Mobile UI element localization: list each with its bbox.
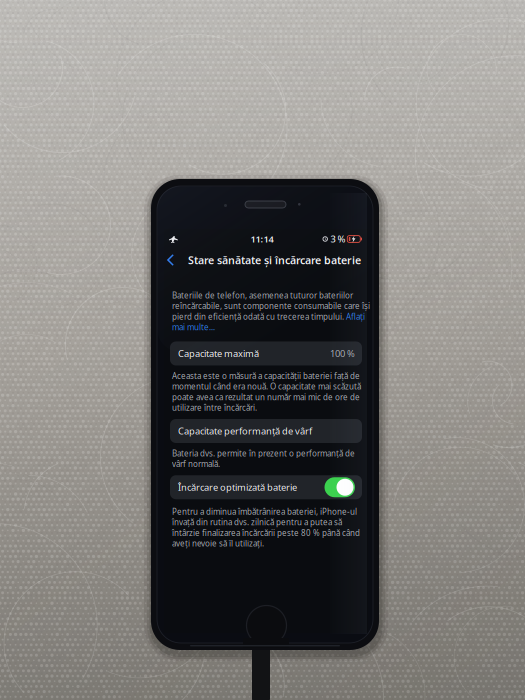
staticText: 11:14 bbox=[250, 233, 273, 245]
staticText: Capacitate maximă bbox=[178, 347, 259, 360]
staticText: Capacitate performanță de vârf bbox=[178, 425, 312, 437]
staticText: Bateria dvs. permite în prezent o perfor… bbox=[172, 448, 355, 469]
button[interactable]: Capacitate performanță de vârf bbox=[170, 419, 362, 443]
staticText: 100 % bbox=[330, 347, 355, 360]
staticText: Stare sănătate și încărcare baterie bbox=[188, 253, 361, 267]
staticText: Aceasta este o măsură a capacității bate… bbox=[172, 370, 361, 413]
staticText: Bateriile de telefon, asemenea tuturor b… bbox=[172, 290, 370, 332]
button[interactable]: Bateriile de telefon, asemenea tuturor b… bbox=[172, 290, 370, 332]
staticText: 3 % bbox=[330, 233, 345, 245]
staticText: Încărcare optimizată baterie bbox=[178, 481, 297, 493]
button[interactable]: Încărcare optimizată baterie bbox=[170, 475, 362, 499]
button[interactable]: Back bbox=[164, 249, 188, 271]
staticText: Pentru a diminua îmbătrânirea bateriei, … bbox=[172, 506, 360, 549]
